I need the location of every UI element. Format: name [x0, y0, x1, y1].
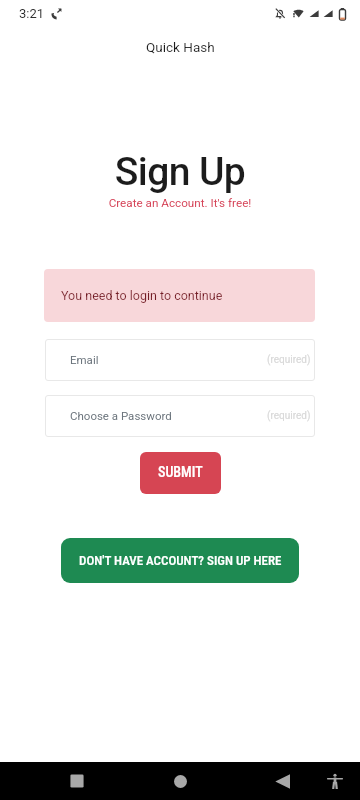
button[interactable]: Recent apps: [53, 762, 101, 800]
staticText: Create an Account. It's free!: [0, 196, 360, 210]
staticText: 3:21: [19, 6, 45, 21]
staticText: SUBMIT: [158, 464, 203, 480]
staticText: (required): [267, 410, 311, 422]
staticText: You need to login to continue: [61, 288, 223, 303]
button[interactable]: Back: [258, 762, 306, 800]
button[interactable]: You need to login to continue: [44, 269, 315, 322]
button[interactable]: Email: [45, 339, 315, 381]
staticText: Quick Hash: [146, 39, 215, 55]
button[interactable]: Home: [156, 762, 204, 800]
staticText: Choose a Password: [70, 409, 172, 422]
staticText: (required): [267, 354, 311, 366]
staticText: DON'T HAVE ACCOUNT? SIGN UP HERE: [79, 553, 282, 568]
button[interactable]: SUBMIT: [140, 452, 221, 494]
button[interactable]: Choose a Password: [45, 395, 315, 437]
button[interactable]: DON'T HAVE ACCOUNT? SIGN UP HERE: [61, 538, 299, 583]
staticText: Sign Up: [0, 149, 360, 195]
staticText: Email: [70, 353, 99, 366]
button[interactable]: Accessibility: [311, 762, 359, 800]
